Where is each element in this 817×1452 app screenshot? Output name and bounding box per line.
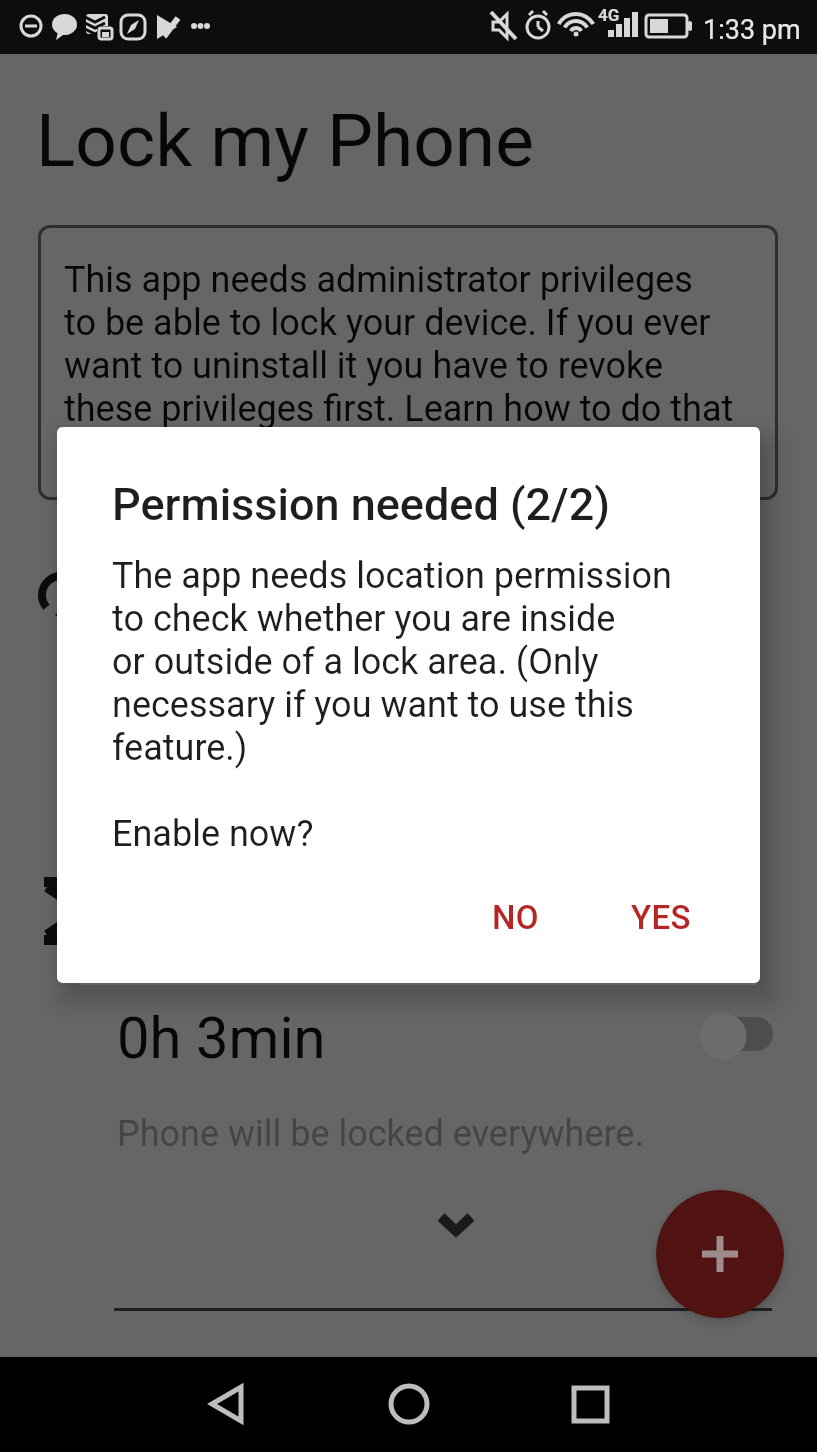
- button[interactable]: This app needs administrator privileges …: [38, 225, 778, 500]
- button[interactable]: Home: [366, 1357, 446, 1452]
- staticText: Phone will be locked everywhere.: [117, 1113, 644, 1155]
- staticText: The app needs location permission to che…: [112, 555, 712, 855]
- staticText: 4G: [598, 5, 620, 25]
- button[interactable]: Expand: [420, 1195, 492, 1267]
- staticText: 0h 3min: [117, 1004, 326, 1072]
- staticText: This app needs administrator privileges …: [64, 259, 764, 473]
- button[interactable]: Add lock schedule: [656, 1190, 784, 1318]
- button[interactable]: NO: [468, 880, 563, 955]
- staticText: Lock my Phone: [36, 98, 534, 184]
- button[interactable]: Recent apps: [549, 1357, 629, 1452]
- staticText: 1:33 pm: [703, 14, 801, 46]
- button[interactable]: Back: [190, 1357, 270, 1452]
- staticText: Permission needed (2/2): [112, 478, 610, 531]
- staticText: NO: [492, 898, 539, 937]
- button[interactable]: YES: [607, 880, 715, 955]
- staticText: YES: [631, 898, 691, 937]
- button[interactable]: Enable lock schedule: [697, 1008, 779, 1060]
